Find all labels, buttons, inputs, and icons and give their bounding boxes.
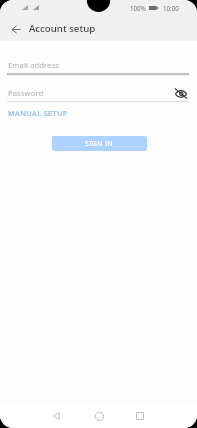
button[interactable]: Home (90, 407, 108, 425)
staticText: SIGN IN (85, 139, 114, 148)
staticText: Account setup (29, 22, 96, 35)
staticText: Email address (8, 60, 59, 71)
button[interactable]: Back (47, 407, 65, 425)
button[interactable]: SIGN IN (52, 136, 147, 151)
staticText: Password (8, 88, 44, 99)
button[interactable]: Back (8, 22, 23, 37)
staticText: MANUAL SETUP (8, 108, 68, 118)
button[interactable]: Recent apps (131, 407, 149, 425)
button[interactable]: MANUAL SETUP (8, 108, 68, 118)
button[interactable]: Show password (173, 86, 188, 101)
staticText: 100% (130, 4, 146, 12)
staticText: 10:00 (163, 4, 179, 12)
